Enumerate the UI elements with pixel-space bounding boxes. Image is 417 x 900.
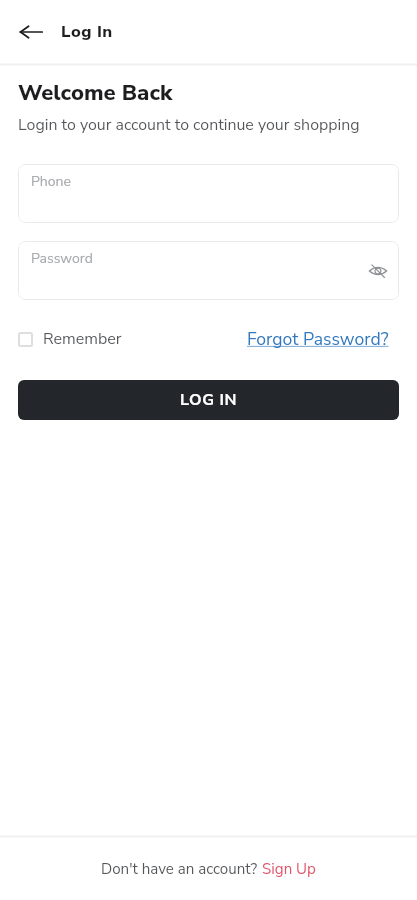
button[interactable]: Log In (61, 20, 113, 43)
button[interactable]: Forgot Password? (247, 327, 389, 351)
staticText: Don't have an account? (101, 859, 262, 880)
button[interactable]: Password (18, 241, 399, 300)
staticText: Password (31, 249, 93, 268)
button[interactable]: Phone (18, 164, 399, 223)
staticText: Remember (43, 328, 122, 350)
button[interactable]: Remember (18, 328, 122, 350)
staticText: LOG IN (180, 389, 238, 411)
button[interactable]: Back (11, 12, 51, 52)
button[interactable]: Show password (363, 256, 393, 286)
staticText: Welcome Back (18, 78, 173, 108)
button[interactable]: Sign Up (262, 859, 316, 880)
staticText: Login to your account to continue your s… (18, 114, 360, 136)
button[interactable]: LOG IN (18, 380, 399, 420)
staticText: Phone (31, 172, 71, 191)
